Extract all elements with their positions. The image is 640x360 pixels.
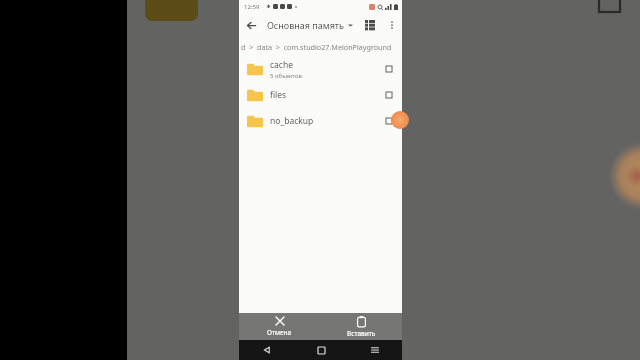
- button[interactable]: Вид списка: [358, 13, 382, 37]
- staticText: cache: [270, 59, 293, 71]
- button[interactable]: Ещё: [382, 15, 402, 35]
- staticText: Основная память: [267, 19, 344, 31]
- button[interactable]: Отмена: [239, 313, 320, 340]
- button[interactable]: Выбрать cache: [379, 59, 399, 79]
- button[interactable]: Вставить: [320, 313, 402, 340]
- button[interactable]: Главный экран: [294, 340, 348, 360]
- staticText: d > data > com.studio27.MelonPlayground: [241, 42, 392, 52]
- staticText: no_backup: [270, 115, 314, 127]
- button[interactable]: d > data > com.studio27.MelonPlayground: [239, 37, 402, 56]
- button[interactable]: Назад: [239, 340, 294, 360]
- staticText: 5 объектов: [270, 72, 302, 80]
- button[interactable]: Недавние: [348, 340, 402, 360]
- button[interactable]: cache: [239, 56, 402, 82]
- staticText: Отмена: [267, 328, 292, 337]
- button[interactable]: Назад: [239, 13, 263, 37]
- staticText: files: [270, 89, 287, 101]
- button[interactable]: Основная память: [263, 13, 358, 37]
- button[interactable]: Выбрать files: [379, 85, 399, 105]
- staticText: 12:59: [244, 3, 260, 11]
- button[interactable]: no_backup: [239, 108, 402, 134]
- button[interactable]: Выбрать no_backup: [379, 111, 399, 131]
- staticText: Вставить: [347, 329, 376, 338]
- button[interactable]: files: [239, 82, 402, 108]
